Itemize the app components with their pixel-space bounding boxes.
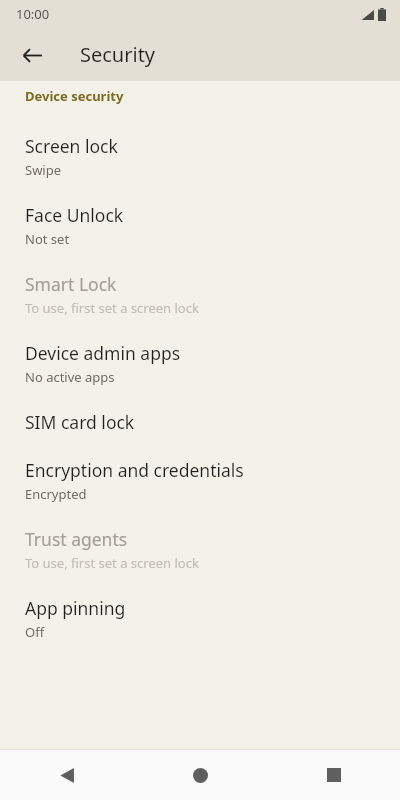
staticText: Swipe xyxy=(25,161,62,179)
staticText: Trust agents xyxy=(25,527,128,551)
staticText: To use, first set a screen lock xyxy=(25,299,199,317)
button[interactable]: Encryption and credentials xyxy=(0,446,400,515)
staticText: Encryption and credentials xyxy=(25,458,244,482)
staticText: Face Unlock xyxy=(25,203,124,227)
staticText: Smart Lock xyxy=(25,272,117,296)
staticText: Encrypted xyxy=(25,485,87,503)
staticText: App pinning xyxy=(25,596,126,620)
button[interactable]: SIM card lock xyxy=(0,398,400,446)
button[interactable]: Recent apps xyxy=(267,750,400,800)
staticText: Device admin apps xyxy=(25,341,181,365)
staticText: Device security xyxy=(25,87,124,105)
staticText: SIM card lock xyxy=(25,410,135,434)
button[interactable]: Back xyxy=(10,33,54,77)
button: Trust agents xyxy=(0,515,400,584)
button[interactable]: App pinning xyxy=(0,584,400,653)
button[interactable]: Face Unlock xyxy=(0,191,400,260)
button[interactable]: Device admin apps xyxy=(0,329,400,398)
button[interactable]: Back xyxy=(0,750,134,800)
button: Smart Lock xyxy=(0,260,400,329)
button[interactable]: Home xyxy=(134,750,267,800)
staticText: Screen lock xyxy=(25,134,118,158)
staticText: No active apps xyxy=(25,368,115,386)
staticText: Off xyxy=(25,623,45,641)
staticText: Security xyxy=(80,41,156,68)
button[interactable]: Screen lock xyxy=(0,122,400,191)
staticText: To use, first set a screen lock xyxy=(25,554,199,572)
staticText: 10:00 xyxy=(16,5,50,23)
staticText: Not set xyxy=(25,230,70,248)
